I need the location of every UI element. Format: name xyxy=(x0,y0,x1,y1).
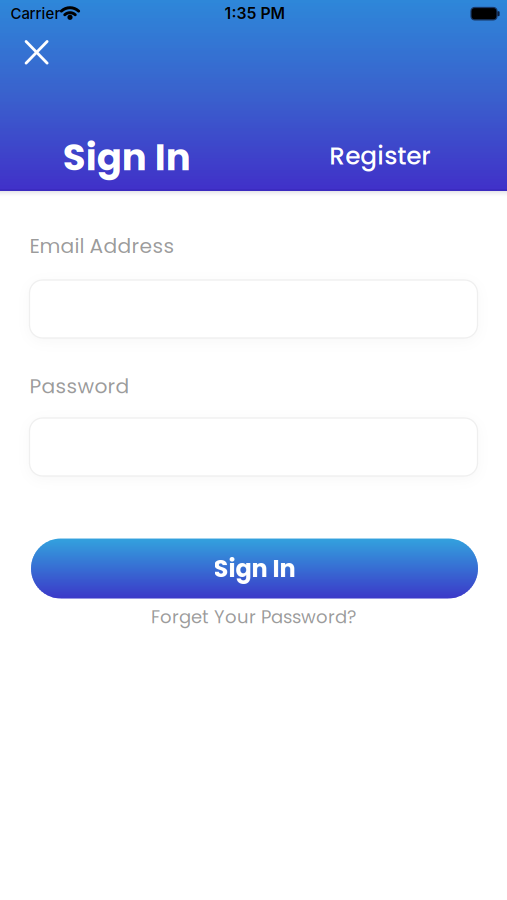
button[interactable]: Sign In xyxy=(0,125,253,189)
staticText: Password xyxy=(29,372,129,400)
button[interactable]: Sign In xyxy=(31,538,478,598)
staticText: Sign In xyxy=(213,552,295,585)
button[interactable]: Close xyxy=(15,30,59,74)
staticText: Email Address xyxy=(29,232,174,260)
staticText: Forget Your Password? xyxy=(151,604,356,630)
staticText: 1:35 PM xyxy=(224,4,285,23)
button[interactable]: Forget Your Password? xyxy=(0,602,507,632)
staticText: Sign In xyxy=(63,131,191,183)
staticText: Register xyxy=(329,138,431,173)
button[interactable]: Register xyxy=(253,124,507,188)
staticText: Carrier xyxy=(11,5,61,23)
